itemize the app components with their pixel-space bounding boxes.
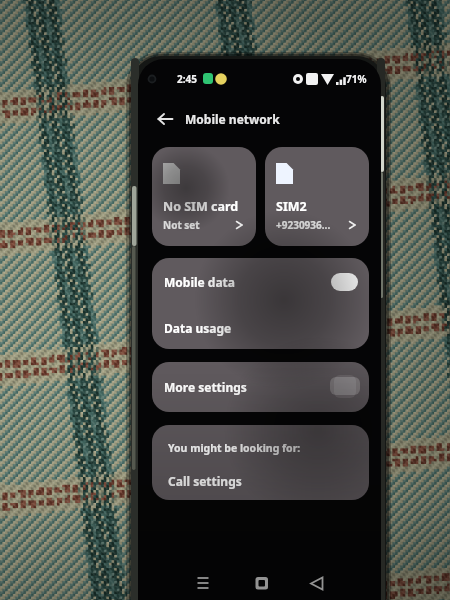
button[interactable]: Back xyxy=(300,568,334,600)
button[interactable]: Recents xyxy=(186,568,220,600)
staticText: SIM2 xyxy=(276,198,307,215)
button[interactable]: More settings xyxy=(152,362,369,412)
button[interactable]: Data usage xyxy=(152,306,369,349)
staticText: No SIM card xyxy=(163,198,239,215)
button[interactable]: No SIM card xyxy=(152,147,256,246)
staticText: You might be looking for: xyxy=(168,441,301,455)
staticText: Call settings xyxy=(168,473,242,489)
staticText: Not set xyxy=(163,218,200,232)
button[interactable]: SIM2 xyxy=(265,147,369,246)
other: Back xyxy=(152,106,178,132)
staticText: 71% xyxy=(346,72,367,86)
staticText: Data usage xyxy=(164,320,232,336)
button[interactable]: Mobile data xyxy=(152,258,369,306)
button[interactable]: Home xyxy=(249,568,283,600)
button[interactable]: Mobile data toggle xyxy=(331,273,358,291)
staticText: More settings xyxy=(164,379,247,395)
staticText: Mobile data xyxy=(164,274,236,290)
button[interactable]: Back xyxy=(152,104,280,133)
button[interactable]: Call settings xyxy=(168,473,242,489)
staticText: 2:45 xyxy=(177,72,197,86)
staticText: +9230936... xyxy=(276,218,331,232)
staticText: Mobile network xyxy=(185,111,280,127)
